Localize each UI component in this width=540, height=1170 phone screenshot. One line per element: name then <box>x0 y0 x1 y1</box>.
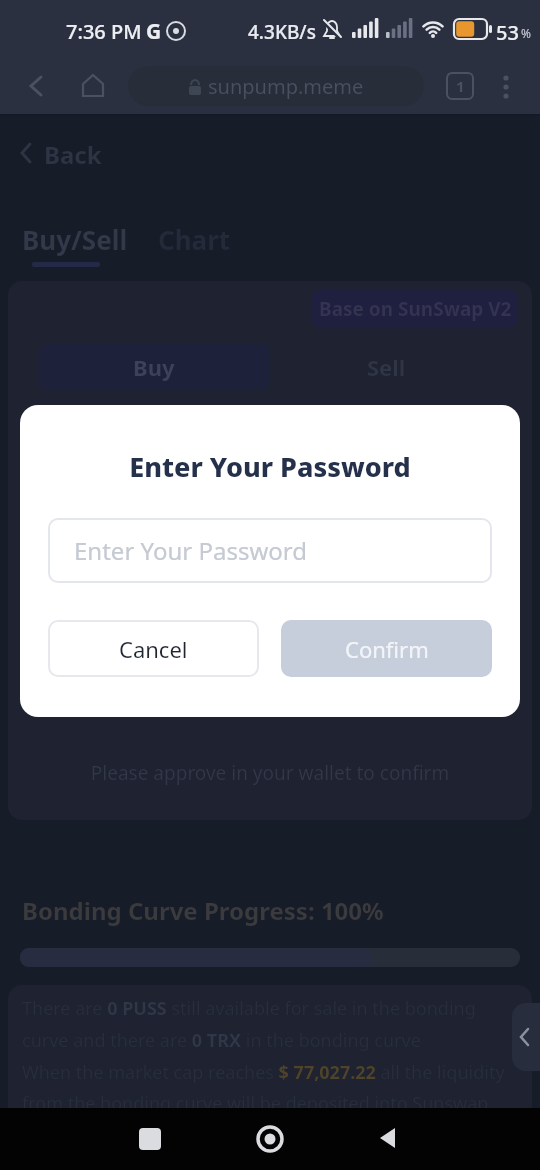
staticText: % <box>521 25 531 41</box>
staticText: 4.3KB/s <box>248 19 316 45</box>
staticText: Bonding Curve Progress: 100% <box>22 894 384 927</box>
staticText: 1 <box>456 76 465 96</box>
staticText: sunpump.meme <box>208 73 364 100</box>
staticText: G <box>146 17 162 46</box>
button[interactable] <box>256 1125 284 1153</box>
staticText: 53 <box>496 19 519 46</box>
staticText: Base on SunSwap V2 <box>319 296 512 322</box>
button[interactable]: Confirm <box>281 620 492 677</box>
staticText: Enter Your Password <box>20 448 520 485</box>
staticText: Please approve in your wallet to confirm <box>0 760 540 786</box>
staticText: Cancel <box>119 634 188 664</box>
button[interactable]: sunpump.meme <box>128 66 424 106</box>
button[interactable] <box>498 74 514 100</box>
button[interactable]: Chart <box>158 222 231 257</box>
staticText: When the market cap reaches $ 77,027.22 … <box>22 1060 505 1085</box>
staticText: Enter Your Password <box>74 534 307 567</box>
button[interactable]: Cancel <box>48 620 259 677</box>
staticText: Back <box>44 138 102 171</box>
staticText: curve and there are 0 TRX in the bonding… <box>22 1028 421 1053</box>
button[interactable]: Buy <box>38 344 270 390</box>
button[interactable] <box>139 1128 161 1150</box>
staticText: Sell <box>367 352 406 382</box>
button[interactable]: Buy/Sell <box>22 222 128 257</box>
button[interactable]: 1 <box>446 72 474 100</box>
button[interactable] <box>512 1003 540 1071</box>
button[interactable] <box>26 75 48 97</box>
button[interactable]: Base on SunSwap V2 <box>312 290 518 327</box>
staticText: Confirm <box>345 634 429 664</box>
button[interactable] <box>377 1127 399 1149</box>
staticText: There are 0 PUSS still available for sal… <box>22 996 476 1021</box>
button[interactable] <box>80 73 106 99</box>
button[interactable]: Enter Your Password <box>48 518 492 583</box>
staticText: 7:36 PM <box>66 18 142 45</box>
staticText: from the bonding curve will be deposited… <box>22 1091 489 1116</box>
staticText: Buy <box>133 352 175 382</box>
